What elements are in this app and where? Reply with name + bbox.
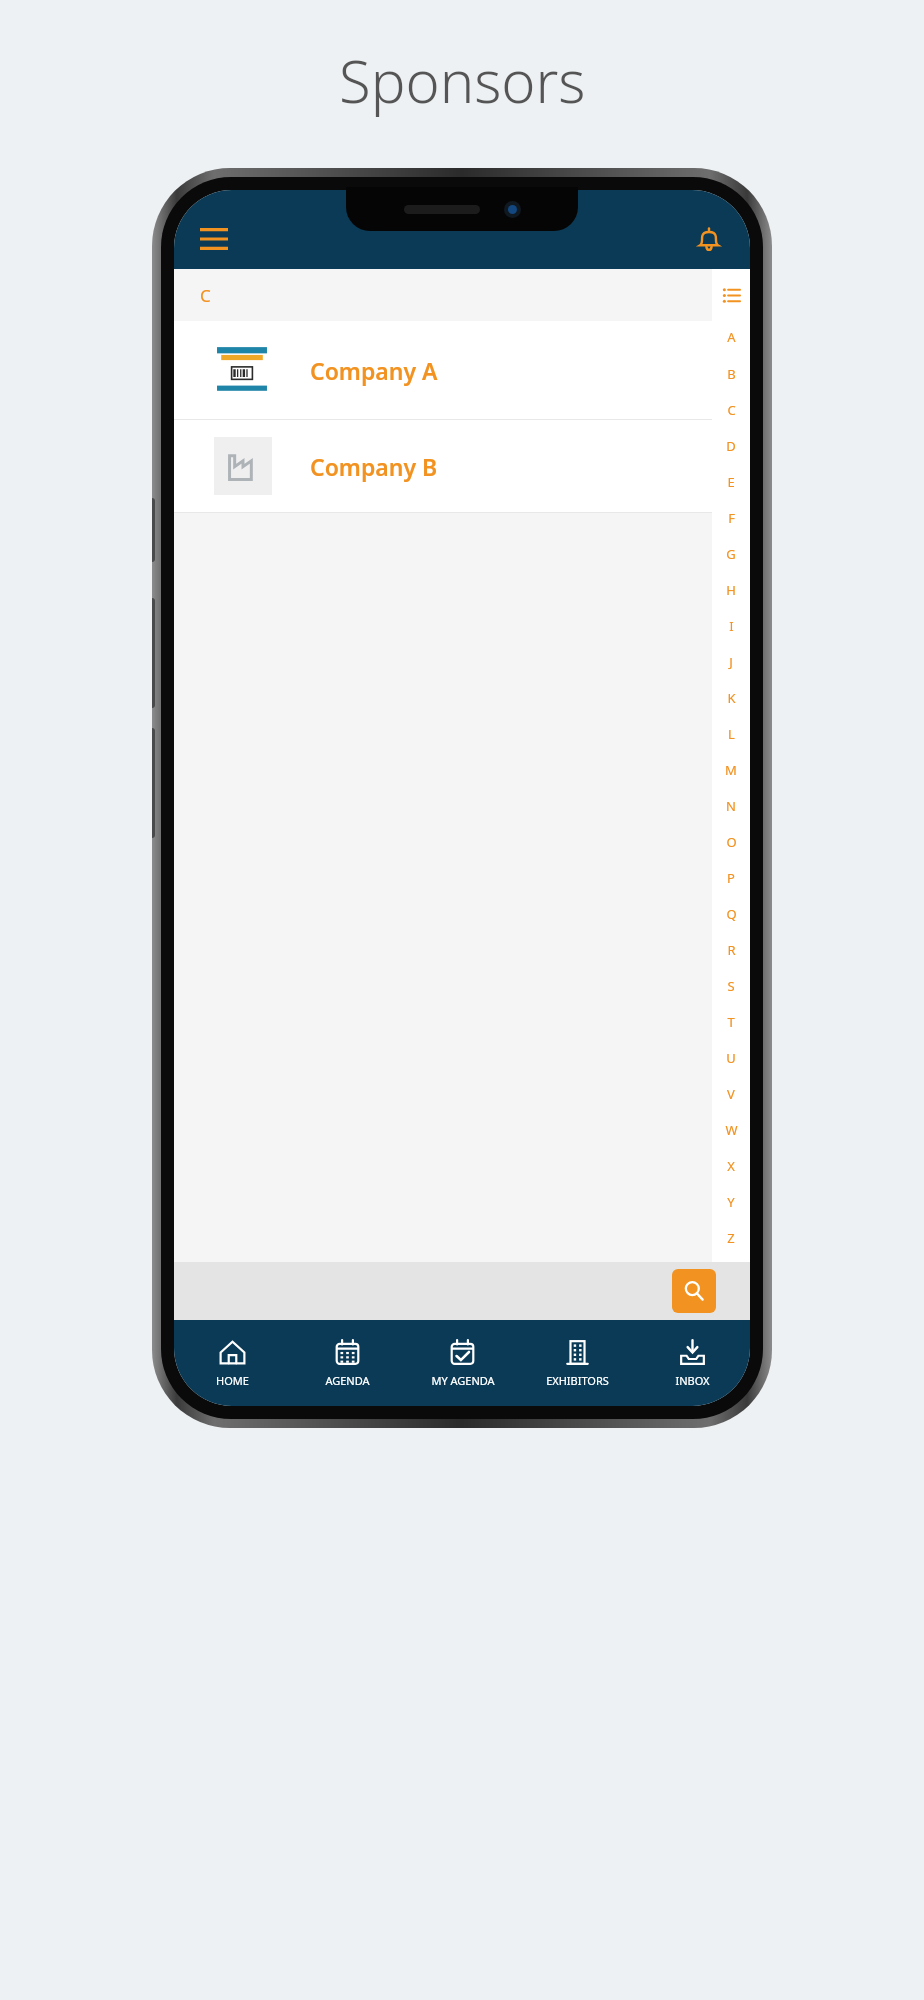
button[interactable]: Search — [672, 1269, 716, 1313]
staticText: Z — [727, 1229, 735, 1247]
button[interactable]: T — [712, 1004, 750, 1040]
staticText: HOME — [216, 1373, 249, 1388]
button[interactable]: E — [712, 464, 750, 500]
button[interactable]: Notifications — [686, 217, 732, 263]
button[interactable]: INBOX — [635, 1320, 750, 1406]
button[interactable]: C — [712, 392, 750, 428]
button[interactable]: I — [712, 608, 750, 644]
button[interactable]: J — [712, 644, 750, 680]
button[interactable]: Q — [712, 896, 750, 932]
button[interactable]: H — [712, 572, 750, 608]
staticText: C — [200, 284, 211, 307]
button[interactable]: S — [712, 968, 750, 1004]
staticText: Company B — [310, 451, 438, 482]
button[interactable]: Company A — [174, 321, 712, 419]
button[interactable]: D — [712, 428, 750, 464]
staticText: J — [729, 653, 733, 671]
button[interactable]: AGENDA — [290, 1320, 405, 1406]
staticText: A — [727, 328, 736, 346]
button[interactable]: R — [712, 932, 750, 968]
staticText: Q — [726, 905, 737, 923]
button[interactable]: MY AGENDA — [405, 1320, 520, 1406]
button[interactable]: Company B — [174, 420, 712, 512]
staticText: Sponsors — [339, 41, 586, 120]
staticText: INBOX — [675, 1373, 710, 1388]
button[interactable]: P — [712, 860, 750, 896]
staticText: D — [726, 437, 736, 455]
button[interactable]: K — [712, 680, 750, 716]
staticText: W — [725, 1121, 738, 1139]
staticText: G — [726, 545, 736, 563]
staticText: V — [727, 1085, 735, 1103]
staticText: L — [728, 725, 735, 743]
button[interactable]: HOME — [174, 1320, 290, 1406]
button[interactable]: F — [712, 500, 750, 536]
button[interactable]: Index — [716, 280, 746, 310]
staticText: AGENDA — [325, 1373, 370, 1388]
staticText: F — [728, 509, 735, 527]
button[interactable]: Menu — [192, 217, 236, 261]
button[interactable]: L — [712, 716, 750, 752]
staticText: Company A — [310, 355, 438, 386]
staticText: M — [725, 761, 737, 779]
staticText: R — [727, 941, 736, 959]
button[interactable]: Z — [712, 1220, 750, 1256]
button[interactable]: O — [712, 824, 750, 860]
staticText: E — [727, 473, 735, 491]
staticText: P — [727, 869, 735, 887]
button[interactable]: V — [712, 1076, 750, 1112]
button[interactable]: Y — [712, 1184, 750, 1220]
staticText: X — [727, 1157, 735, 1175]
button[interactable]: A — [712, 318, 750, 355]
staticText: Y — [727, 1193, 735, 1211]
button[interactable]: W — [712, 1112, 750, 1148]
staticText: MY AGENDA — [431, 1373, 495, 1388]
button[interactable]: B — [712, 355, 750, 392]
staticText: N — [726, 797, 736, 815]
staticText: I — [729, 617, 734, 635]
button[interactable]: N — [712, 788, 750, 824]
staticText: C — [727, 401, 736, 419]
button[interactable]: EXHIBITORS — [520, 1320, 635, 1406]
button[interactable]: M — [712, 752, 750, 788]
staticText: U — [726, 1049, 736, 1067]
staticText: O — [726, 833, 737, 851]
staticText: K — [727, 689, 736, 707]
staticText: EXHIBITORS — [546, 1373, 609, 1388]
button[interactable]: U — [712, 1040, 750, 1076]
staticText: H — [726, 581, 736, 599]
button[interactable]: X — [712, 1148, 750, 1184]
staticText: T — [727, 1013, 735, 1031]
staticText: S — [727, 977, 735, 995]
button[interactable]: G — [712, 536, 750, 572]
staticText: B — [727, 365, 736, 383]
